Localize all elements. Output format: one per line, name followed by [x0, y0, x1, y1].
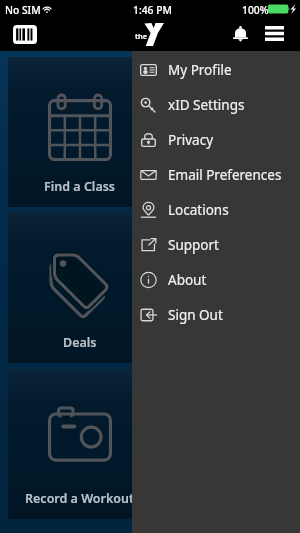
button[interactable]: xID Settings	[132, 87, 300, 122]
staticText: No SIM	[5, 3, 41, 17]
button[interactable]: Locations	[132, 192, 300, 227]
button[interactable]: Membership barcode	[13, 25, 37, 44]
button[interactable]: Sign Out	[132, 297, 300, 332]
staticText: Locations	[168, 201, 229, 219]
button[interactable]: Support	[132, 227, 300, 262]
staticText: Privacy	[168, 131, 214, 149]
staticText: Record a Workout	[25, 490, 135, 507]
button[interactable]: About	[132, 262, 300, 297]
button[interactable]: My Profile	[132, 52, 300, 87]
staticText: About	[168, 271, 207, 289]
staticText: the	[135, 31, 148, 41]
staticText: Find a Class	[44, 178, 116, 195]
button[interactable]: Menu	[261, 20, 287, 46]
button[interactable]: Notifications	[228, 20, 253, 46]
staticText: Email Preferences	[168, 166, 282, 184]
button[interactable]: Record a Workout	[8, 369, 300, 519]
staticText: Deals	[63, 334, 97, 351]
staticText: Sign Out	[168, 306, 223, 324]
button[interactable]: Find a Class	[8, 57, 300, 207]
staticText: 1:46 PM	[133, 3, 172, 17]
staticText: My Profile	[168, 61, 232, 79]
staticText: 100%	[242, 3, 269, 17]
button[interactable]: Email Preferences	[132, 157, 300, 192]
button[interactable]: Privacy	[132, 122, 300, 157]
staticText: Support	[168, 236, 219, 254]
staticText: xID Settings	[168, 96, 245, 114]
button[interactable]: Deals	[8, 213, 300, 363]
